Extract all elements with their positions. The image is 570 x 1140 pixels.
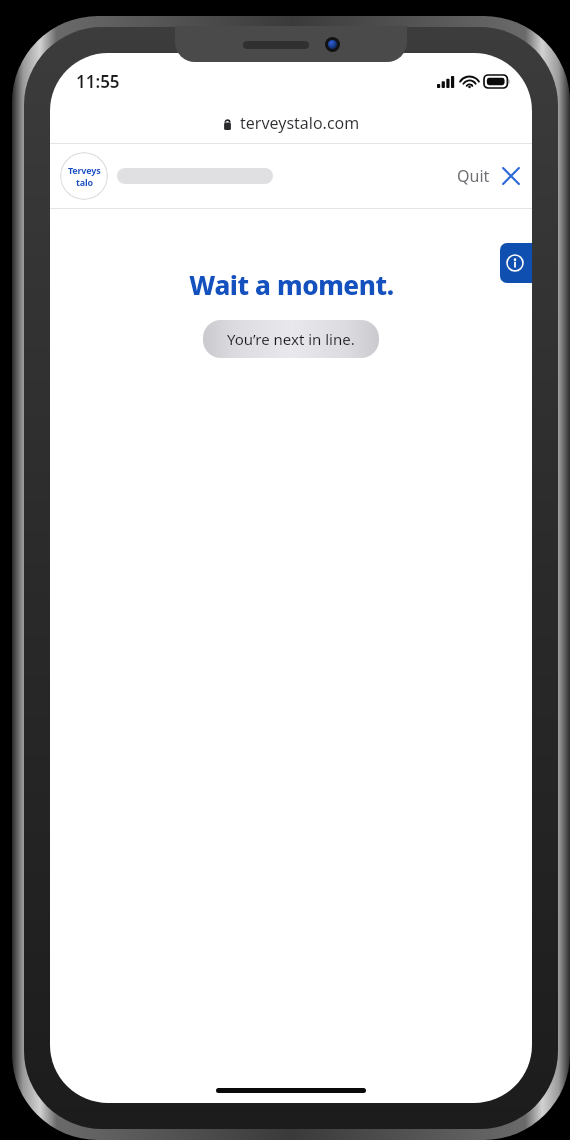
staticText: 11:55 [76,70,120,93]
staticText: terveystalo.com [240,112,360,134]
button[interactable]: You’re next in line. [203,320,379,358]
staticText: You’re next in line. [227,329,355,349]
staticText: Wait a moment. [189,267,394,302]
staticText: Quit [457,165,490,187]
button[interactable]: Information [500,243,532,283]
staticText: Terveys [68,164,101,176]
button[interactable]: Terveys [60,152,108,200]
button[interactable]: Quit [457,165,522,187]
staticText: talo [76,176,93,188]
button[interactable]: terveystalo.com [50,103,532,143]
